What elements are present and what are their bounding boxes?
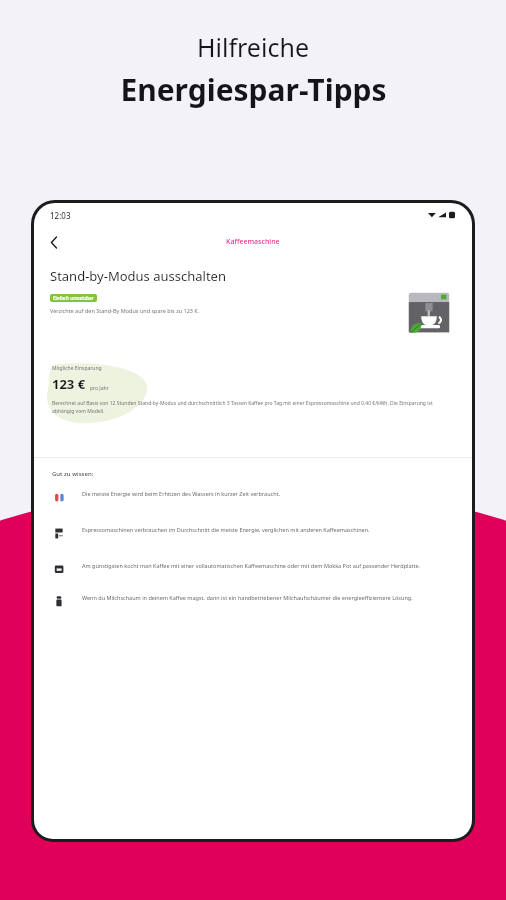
button[interactable]: Wenn du Milchschaum in deinem Kaffee mag…	[34, 594, 472, 608]
button[interactable]: Am günstigsten kocht man Kaffee mit eine…	[34, 562, 472, 576]
staticText: Berechnet auf Basis von 12 Stunden Stand…	[52, 400, 454, 415]
staticText: Die meiste Energie wird beim Erhitzen de…	[82, 490, 281, 497]
staticText: Espressomaschinen verbrauchen im Durchsc…	[82, 526, 370, 533]
button[interactable]: Die meiste Energie wird beim Erhitzen de…	[34, 490, 472, 504]
staticText: Mögliche Einsparung	[52, 365, 102, 372]
staticText: Energiespar-Tipps	[120, 69, 387, 110]
staticText: Stand-by-Modus ausschalten	[50, 267, 226, 285]
staticText: Verzichte auf den Stand-By Modus und spa…	[50, 307, 200, 314]
button[interactable]: Zurück	[40, 228, 68, 256]
staticText: Wenn du Milchschaum in deinem Kaffee mag…	[82, 594, 413, 601]
staticText: Gut zu wissen:	[52, 470, 94, 478]
staticText: Am günstigsten kocht man Kaffee mit eine…	[82, 562, 421, 569]
staticText: 123 €	[52, 375, 86, 393]
button[interactable]: Espressomaschinen verbrauchen im Durchsc…	[34, 526, 472, 540]
staticText: Hilfreiche	[197, 30, 309, 64]
staticText: 12:03	[50, 210, 71, 221]
staticText: pro Jahr	[90, 385, 109, 392]
staticText: Einfach umsetzbar	[53, 295, 94, 301]
staticText: Kaffeemaschine	[226, 237, 280, 247]
